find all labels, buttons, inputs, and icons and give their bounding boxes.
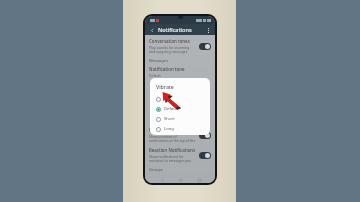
button[interactable]: Default bbox=[156, 104, 206, 114]
button[interactable]: Recents bbox=[197, 178, 201, 182]
button[interactable]: Long bbox=[156, 124, 206, 134]
button[interactable]: Home bbox=[178, 178, 182, 182]
button[interactable]: Off bbox=[156, 94, 206, 104]
staticText: Show notifications for reactions to mess… bbox=[149, 154, 196, 163]
button[interactable]: Reaction Notifications bbox=[145, 146, 215, 164]
button[interactable]: Back bbox=[160, 178, 164, 182]
staticText: Vibrate bbox=[156, 83, 174, 90]
button[interactable]: Notification tone bbox=[145, 65, 215, 79]
staticText: Use high priority notifications bbox=[149, 127, 196, 133]
button[interactable]: Back bbox=[148, 26, 156, 34]
staticText: Play sounds for incoming and outgoing me… bbox=[149, 45, 196, 54]
button[interactable]: Toggle bbox=[199, 43, 211, 50]
staticText: Groups bbox=[149, 167, 163, 172]
staticText: Conversation tones bbox=[149, 38, 190, 44]
button[interactable]: Conversation tones bbox=[145, 37, 215, 55]
staticText: Messages bbox=[149, 58, 168, 63]
staticText: Reaction Notifications bbox=[149, 147, 196, 153]
staticText: Notification tone bbox=[149, 66, 185, 72]
button[interactable]: Use high priority notifications bbox=[145, 126, 215, 144]
button[interactable]: More options bbox=[204, 26, 212, 34]
button[interactable]: Short bbox=[156, 114, 206, 124]
staticText: Default bbox=[164, 106, 179, 112]
staticText: Show previews of notifications at the to… bbox=[149, 134, 196, 143]
staticText: Off bbox=[164, 96, 171, 102]
staticText: Short bbox=[164, 116, 175, 122]
button[interactable]: Toggle bbox=[199, 152, 211, 159]
staticText: Long bbox=[164, 126, 174, 132]
staticText: Default bbox=[149, 73, 161, 78]
button[interactable]: Toggle bbox=[199, 132, 211, 139]
staticText: Notifications bbox=[158, 26, 192, 33]
